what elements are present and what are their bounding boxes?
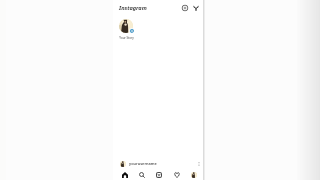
button[interactable]: Profile photo (120, 161, 126, 167)
button[interactable]: Your story (119, 19, 133, 33)
button[interactable]: Reels (153, 169, 165, 180)
staticText: yourusername (129, 161, 157, 166)
button[interactable]: yourusername (129, 161, 157, 166)
button[interactable]: Profile (188, 169, 200, 180)
button[interactable]: Messages (191, 3, 201, 13)
button[interactable]: New post (180, 3, 190, 13)
button[interactable]: Home (119, 169, 131, 180)
button[interactable]: Search (136, 169, 148, 180)
button[interactable]: Activity (171, 169, 183, 180)
staticText: Your Story (114, 36, 139, 40)
button[interactable]: Instagram (119, 4, 147, 12)
button[interactable]: More options (194, 159, 203, 168)
staticText: Instagram (119, 4, 147, 12)
